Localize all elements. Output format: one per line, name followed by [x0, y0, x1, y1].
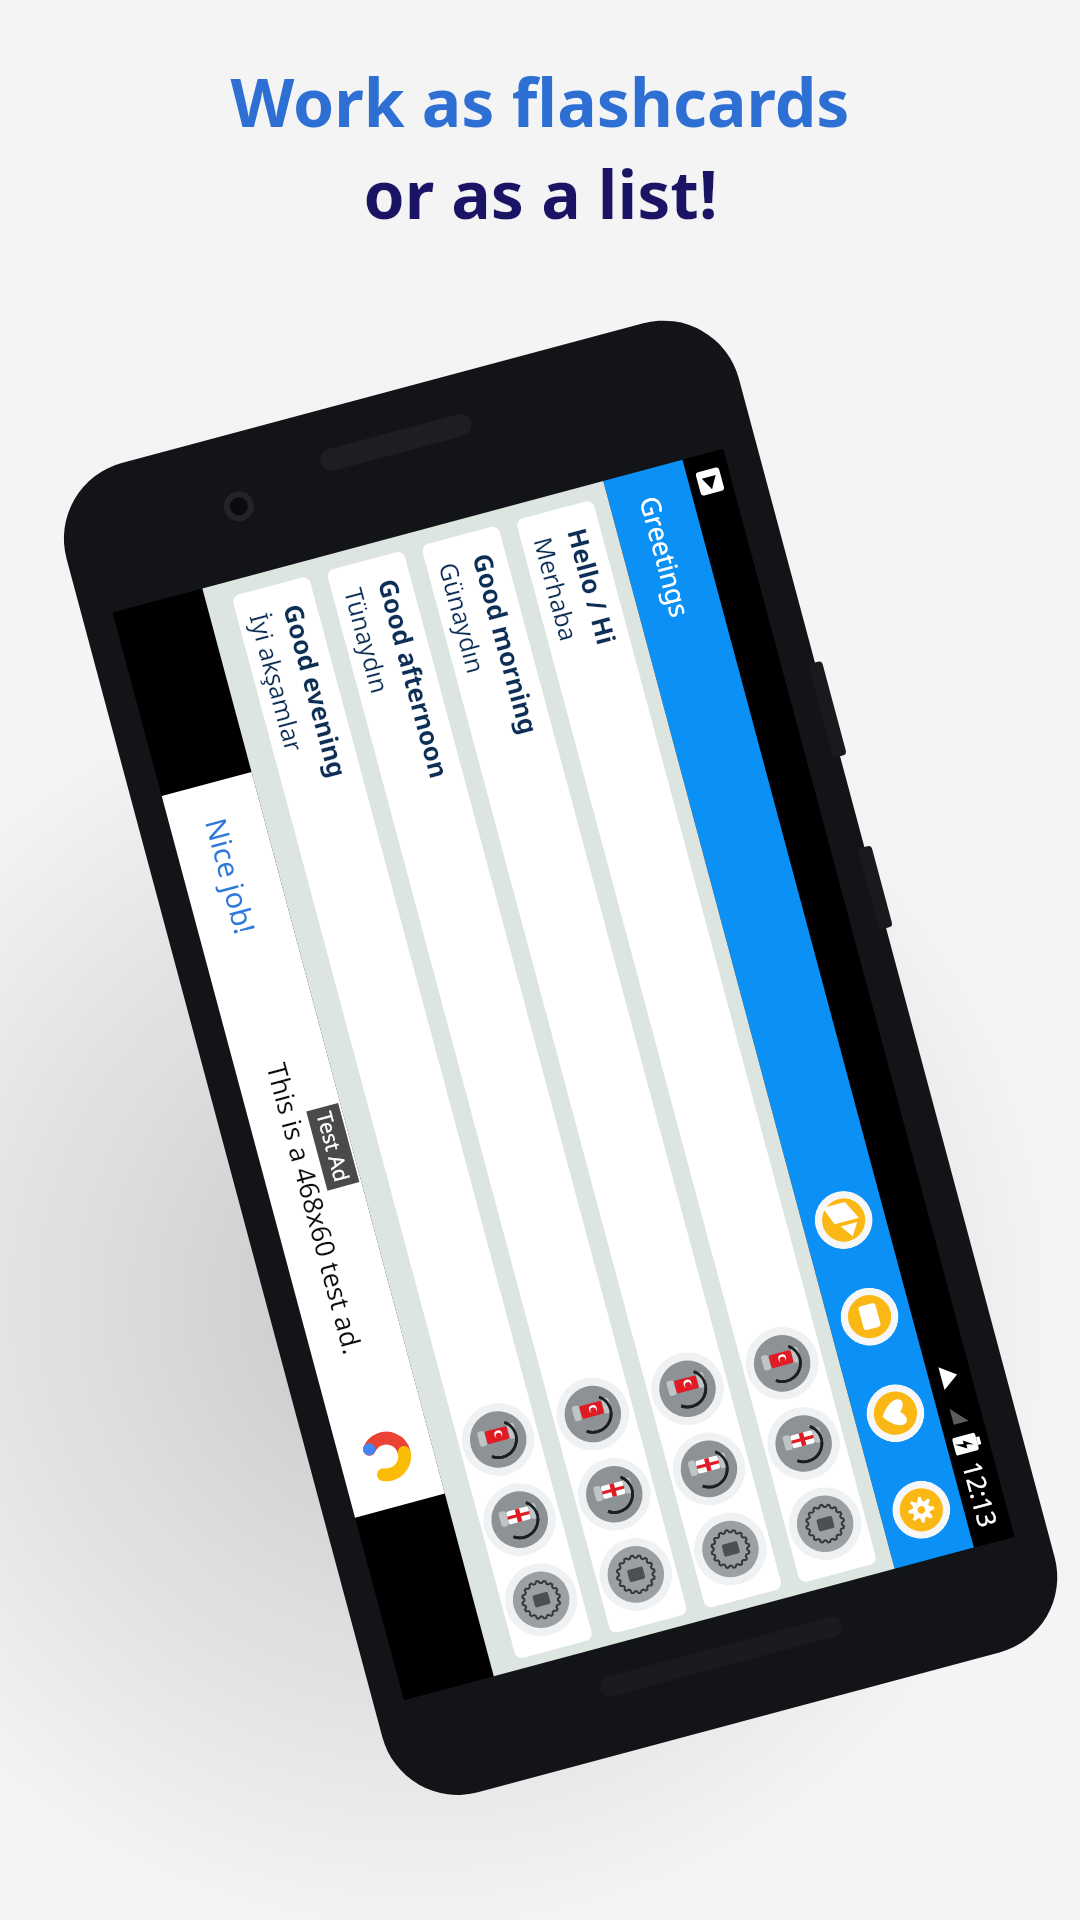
button[interactable]: Listen in English: [570, 1449, 659, 1539]
button[interactable]: Badge: [496, 1555, 586, 1644]
button[interactable]: Listen in English: [664, 1424, 754, 1514]
staticText: 12:13: [955, 1457, 1006, 1531]
button[interactable]: Nice job!: [162, 772, 445, 1518]
button[interactable]: Listen in Turkish: [453, 1395, 543, 1484]
button[interactable]: Good evening: [231, 576, 594, 1660]
staticText: Greetings: [631, 492, 699, 621]
staticText: Merhaba: [526, 533, 587, 644]
staticText: Good afternoon: [371, 575, 458, 782]
button[interactable]: Badge: [780, 1479, 870, 1568]
button[interactable]: Listen in Turkish: [548, 1369, 637, 1459]
button[interactable]: Good morning: [421, 525, 783, 1609]
button[interactable]: Favourites: [860, 1378, 931, 1449]
button[interactable]: Listen in English: [759, 1399, 848, 1488]
staticText: Work as flashcards: [230, 56, 850, 146]
staticText: Hello / Hi: [560, 524, 625, 649]
staticText: This is a 468x60 test ad.: [258, 1059, 372, 1358]
button[interactable]: Hello / Hi: [515, 499, 877, 1584]
button[interactable]: Listen in Turkish: [737, 1319, 827, 1408]
staticText: Tünaydın: [337, 584, 398, 697]
button[interactable]: Card: [834, 1281, 905, 1352]
staticText: Good morning: [465, 549, 547, 738]
staticText: Test Ad: [309, 1108, 356, 1185]
button[interactable]: Badge: [591, 1530, 680, 1619]
staticText: or as a list!: [363, 148, 718, 238]
button[interactable]: Flashcards: [808, 1184, 879, 1255]
button[interactable]: Listen in English: [475, 1475, 564, 1564]
button[interactable]: Listen in Turkish: [643, 1344, 732, 1433]
staticText: İyi akşamlar: [242, 609, 312, 755]
staticText: Günaydın: [432, 559, 494, 677]
button[interactable]: Settings: [886, 1474, 957, 1545]
staticText: Good evening: [276, 600, 356, 781]
button[interactable]: Badge: [686, 1504, 775, 1594]
staticText: Nice job!: [197, 814, 266, 939]
button[interactable]: Good afternoon: [326, 550, 688, 1634]
